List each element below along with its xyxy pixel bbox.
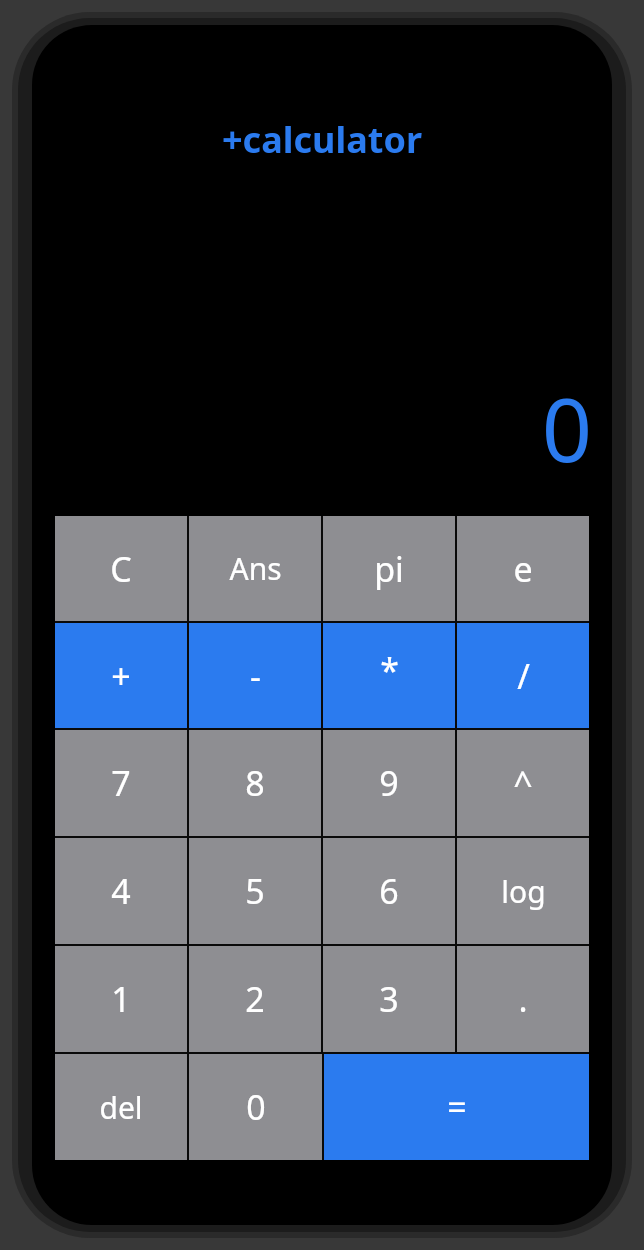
staticText: -	[250, 653, 261, 699]
button[interactable]: del	[55, 1054, 187, 1160]
staticText: 1	[111, 976, 131, 1022]
staticText: 2	[245, 976, 265, 1022]
button[interactable]: 4	[55, 838, 187, 944]
staticText: ^	[513, 760, 533, 806]
button[interactable]: log	[457, 838, 589, 944]
staticText: 3	[379, 976, 399, 1022]
staticText: e	[513, 546, 533, 592]
staticText: 6	[379, 868, 399, 914]
staticText: .	[518, 976, 528, 1022]
staticText: /	[517, 653, 530, 699]
staticText: 8	[245, 760, 265, 806]
button[interactable]: 9	[323, 730, 455, 836]
staticText: +calculator	[222, 115, 422, 164]
button[interactable]: *	[323, 623, 455, 728]
button[interactable]: +	[55, 623, 187, 728]
button[interactable]: ^	[457, 730, 589, 836]
button[interactable]: e	[457, 516, 589, 621]
staticText: 0	[541, 368, 592, 488]
button[interactable]: Ans	[189, 516, 321, 621]
button[interactable]: =	[324, 1054, 589, 1160]
staticText: pi	[374, 546, 404, 592]
staticText: 7	[111, 760, 131, 806]
button[interactable]: pi	[323, 516, 455, 621]
button[interactable]: 7	[55, 730, 187, 836]
button[interactable]: 6	[323, 838, 455, 944]
button[interactable]: .	[457, 946, 589, 1052]
staticText: 0	[246, 1084, 266, 1130]
button[interactable]: 8	[189, 730, 321, 836]
button[interactable]: 5	[189, 838, 321, 944]
button[interactable]: 1	[55, 946, 187, 1052]
button[interactable]: 0	[189, 1054, 322, 1160]
button[interactable]: C	[55, 516, 187, 621]
staticText: 9	[379, 760, 399, 806]
staticText: =	[447, 1084, 467, 1130]
staticText: 4	[111, 868, 131, 914]
staticText: log	[501, 871, 546, 912]
staticText: Ans	[229, 548, 282, 589]
button[interactable]: +calculator	[32, 115, 612, 164]
staticText: C	[110, 546, 132, 592]
button[interactable]: 3	[323, 946, 455, 1052]
button[interactable]: 2	[189, 946, 321, 1052]
staticText: *	[380, 647, 399, 693]
staticText: +	[111, 653, 131, 699]
staticText: del	[99, 1087, 143, 1128]
button[interactable]: -	[189, 623, 321, 728]
staticText: 5	[245, 868, 265, 914]
button[interactable]: /	[457, 623, 589, 728]
